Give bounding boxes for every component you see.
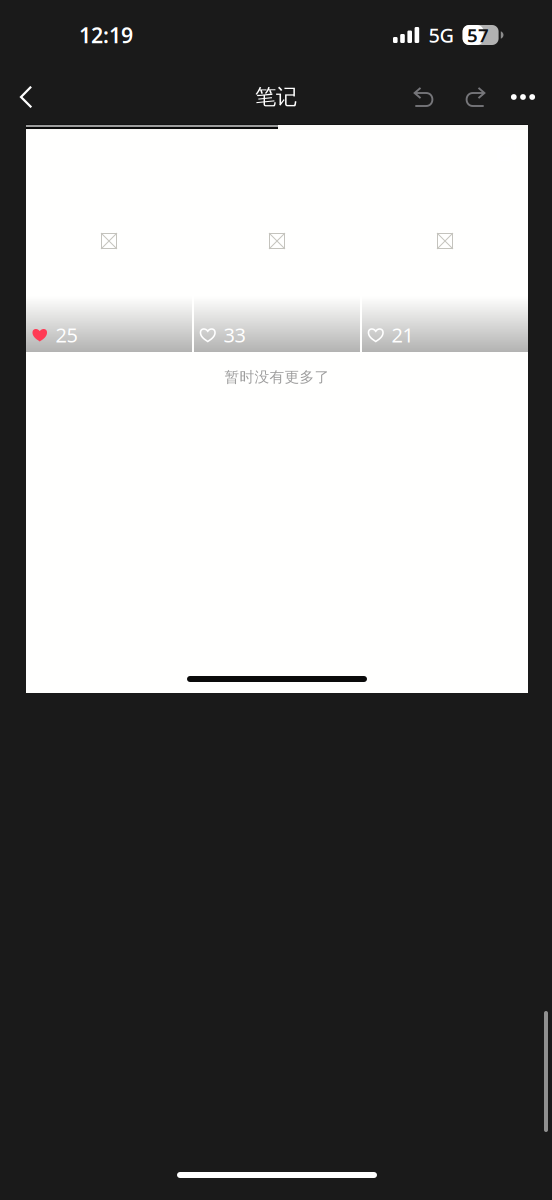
- staticText: 笔记: [255, 84, 297, 110]
- button[interactable]: Back: [4, 74, 48, 120]
- button[interactable]: Note with 33 likes: [194, 130, 360, 352]
- staticText: 21: [391, 321, 413, 348]
- button[interactable]: Redo: [449, 74, 501, 120]
- image: [437, 233, 453, 249]
- staticText: 12:19: [79, 21, 133, 49]
- button[interactable]: More options: [501, 74, 545, 120]
- button[interactable]: Undo: [399, 74, 449, 120]
- button[interactable]: Note with 25 likes: [26, 130, 192, 352]
- staticText: 57: [467, 23, 489, 47]
- staticText: 5G: [429, 22, 455, 48]
- staticText: 25: [55, 321, 77, 348]
- button[interactable]: Note with 21 likes: [362, 130, 528, 352]
- image: [269, 233, 285, 249]
- image: [101, 233, 117, 249]
- staticText: 33: [223, 321, 245, 348]
- staticText: 暂时没有更多了: [224, 368, 329, 386]
